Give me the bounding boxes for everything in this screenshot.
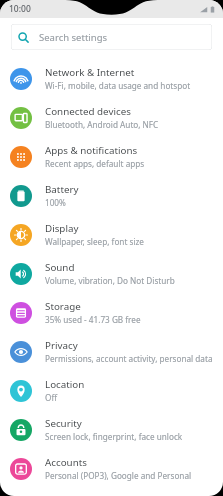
staticText: Wallpaper, sleep, font size — [45, 236, 144, 247]
staticText: Storage — [45, 300, 81, 313]
button[interactable]: Network & Internet — [0, 59, 223, 98]
staticText: Network & Internet — [45, 66, 135, 79]
staticText: Security — [45, 417, 82, 430]
staticText: Location — [45, 378, 85, 391]
staticText: 100% — [45, 197, 66, 208]
staticText: Screen lock, fingerprint, face unlock — [45, 431, 183, 442]
staticText: Accounts — [45, 456, 87, 469]
button[interactable]: Sound — [0, 254, 223, 293]
staticText: Off — [45, 392, 58, 403]
staticText: Battery — [45, 183, 79, 196]
button[interactable]: Search settings — [11, 24, 212, 50]
button[interactable]: Security — [0, 410, 223, 449]
staticText: 35% used - 41.73 GB free — [45, 314, 141, 325]
staticText: Display — [45, 222, 79, 235]
button[interactable]: Accounts — [0, 449, 223, 488]
staticText: Sound — [45, 261, 75, 274]
button[interactable]: Location — [0, 371, 223, 410]
button[interactable]: Battery — [0, 176, 223, 215]
button[interactable]: Apps & notifications — [0, 137, 223, 176]
staticText: Search settings — [39, 31, 108, 44]
staticText: Recent apps, default apps — [45, 158, 145, 169]
staticText: Bluetooth, Android Auto, NFC — [45, 119, 159, 130]
staticText: Permissions, account activity, personal … — [45, 353, 213, 364]
staticText: Wi-Fi, mobile, data usage and hotspot — [45, 80, 191, 91]
button[interactable]: Privacy — [0, 332, 223, 371]
button[interactable]: Storage — [0, 293, 223, 332]
button[interactable]: Connected devices — [0, 98, 223, 137]
button[interactable]: Display — [0, 215, 223, 254]
staticText: Volume, vibration, Do Not Disturb — [45, 275, 175, 286]
staticText: Apps & notifications — [45, 144, 138, 157]
staticText: Personal (POP3), Google and Personal (IM… — [45, 470, 217, 481]
staticText: 10:00 — [9, 3, 31, 15]
staticText: Privacy — [45, 339, 78, 352]
staticText: Connected devices — [45, 105, 131, 118]
